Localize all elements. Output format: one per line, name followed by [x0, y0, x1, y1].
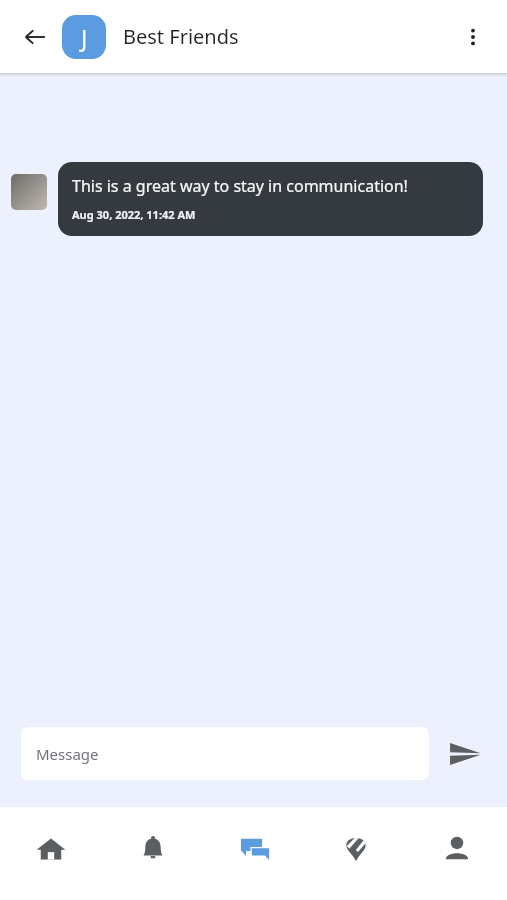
button[interactable]: Back — [18, 20, 52, 54]
button[interactable]: Sender photo — [11, 174, 47, 210]
staticText: Best Friends — [123, 23, 239, 50]
button[interactable]: Places — [305, 807, 406, 900]
staticText: Aug 30, 2022, 11:42 AM — [72, 207, 196, 222]
button[interactable]: Notifications — [102, 807, 204, 900]
button[interactable]: Message — [21, 727, 429, 780]
button[interactable]: Chat — [204, 807, 305, 900]
button[interactable]: Send — [443, 732, 487, 776]
staticText: This is a great way to stay in communica… — [72, 175, 408, 197]
button[interactable]: Profile — [406, 807, 507, 900]
staticText: Message — [36, 744, 99, 764]
button[interactable]: J — [62, 15, 106, 59]
staticText: J — [81, 22, 88, 53]
button[interactable]: More options — [453, 17, 493, 57]
button[interactable]: Home — [0, 807, 102, 900]
button[interactable]: This is a great way to stay in communica… — [58, 162, 483, 236]
